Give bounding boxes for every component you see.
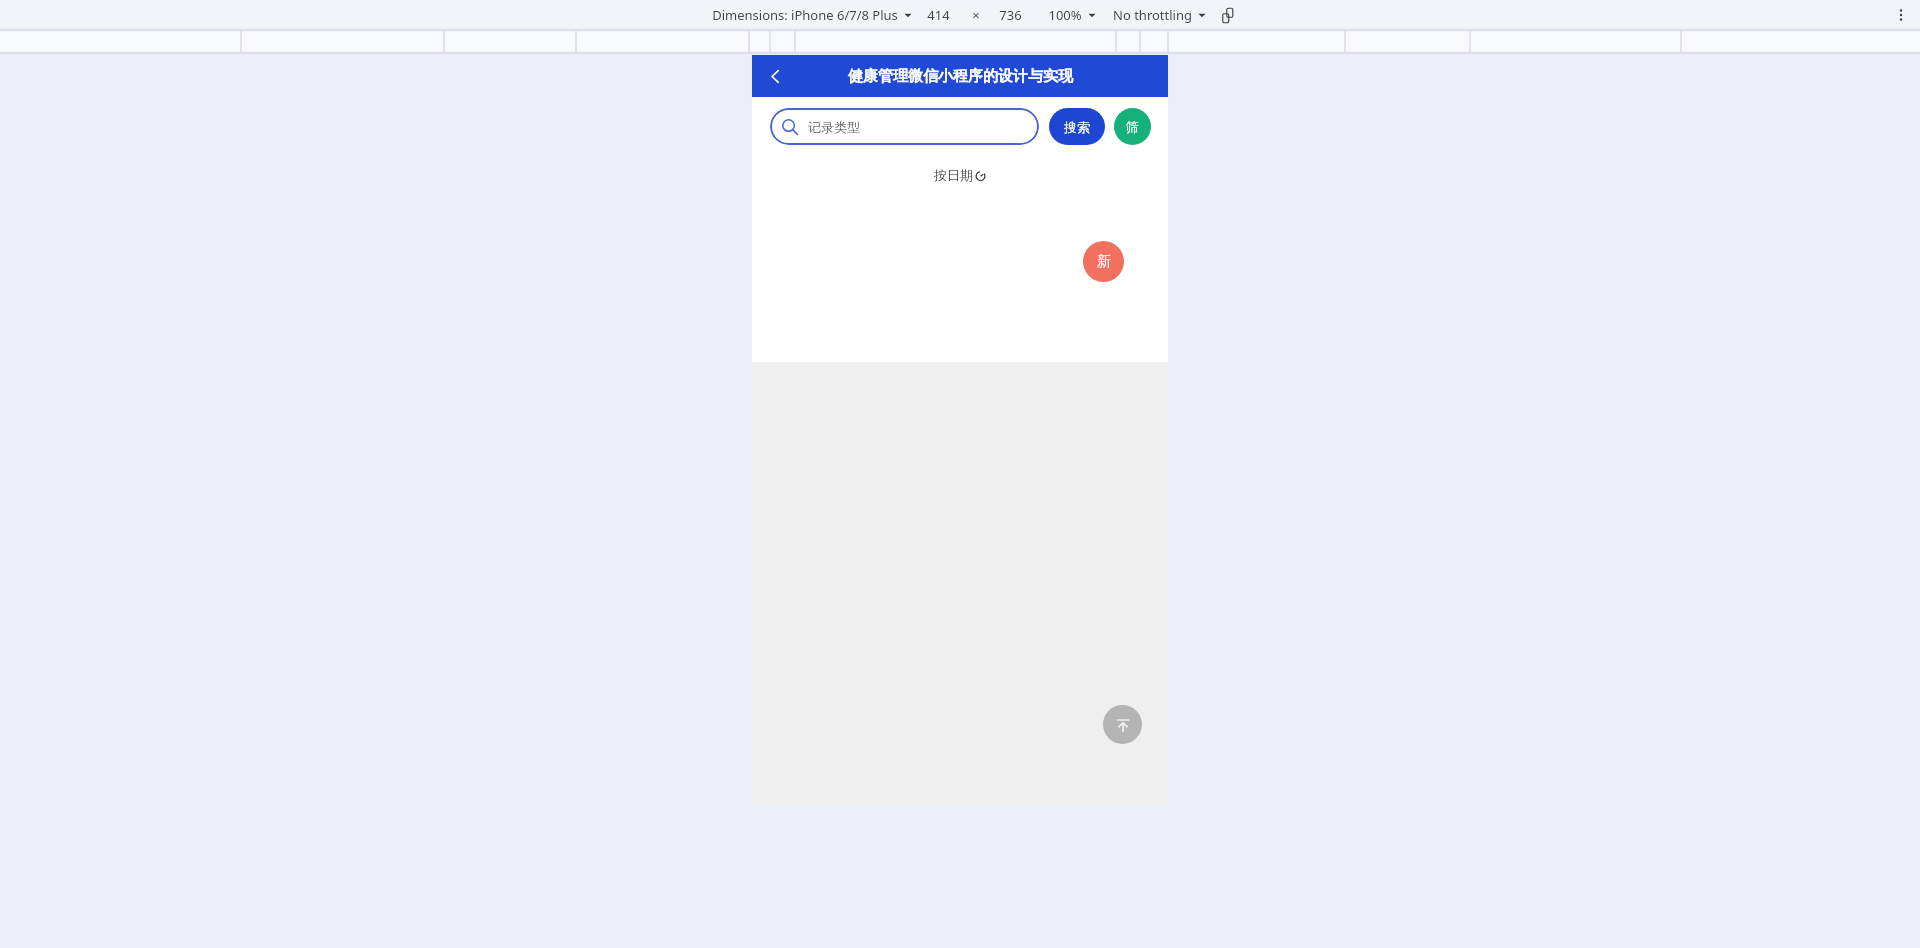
button[interactable]: 记录类型 xyxy=(770,108,1039,145)
button[interactable]: More options xyxy=(1891,5,1911,25)
staticText: 按日期 xyxy=(934,167,973,183)
staticText: 新 xyxy=(1097,253,1111,271)
button[interactable]: 新 xyxy=(1083,241,1124,282)
button[interactable]: Rotate xyxy=(1219,5,1239,25)
button[interactable]: 搜索 xyxy=(1049,108,1105,145)
button[interactable]: 按日期 xyxy=(934,167,986,183)
staticText: × xyxy=(972,6,980,24)
button[interactable]: 筛 xyxy=(1114,108,1151,145)
staticText: 414 xyxy=(927,6,950,24)
staticText: 健康管理微信小程序的设计与实现 xyxy=(848,67,1073,86)
staticText: Dimensions: iPhone 6/7/8 Plus xyxy=(712,6,898,24)
staticText: 736 xyxy=(999,6,1022,24)
staticText: 搜索 xyxy=(1064,119,1090,135)
staticText: No throttling xyxy=(1113,6,1192,24)
staticText: 筛 xyxy=(1126,119,1139,135)
button[interactable]: Back xyxy=(759,60,791,92)
staticText: 记录类型 xyxy=(808,119,860,135)
button[interactable]: Back to top xyxy=(1103,705,1142,744)
staticText: 100% xyxy=(1048,6,1082,24)
